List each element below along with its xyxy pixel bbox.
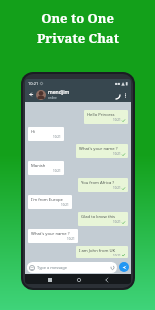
staticText: Private Chat (37, 29, 119, 47)
staticText: Manish (31, 163, 46, 169)
button[interactable]: Back (27, 90, 36, 99)
button[interactable]: Recents (45, 275, 54, 284)
button[interactable]: Hi (28, 127, 64, 141)
staticText: 10:21 (61, 203, 69, 207)
button[interactable]: I'm from Europe (28, 195, 72, 209)
button[interactable]: Call (111, 90, 121, 100)
staticText: 10:21 (113, 118, 121, 122)
staticText: 10:21 (28, 81, 39, 86)
button[interactable]: What's your name ? (28, 229, 78, 243)
staticText: 10:21 (67, 237, 75, 241)
staticText: I am John from UK (79, 248, 116, 254)
staticText: 10:21 (113, 152, 121, 156)
staticText: 10:21 (53, 169, 61, 173)
button[interactable]: What's your name ? (76, 144, 128, 158)
staticText: What's your name ? (31, 231, 70, 237)
staticText: 10:21 (113, 254, 121, 256)
staticText: online (48, 96, 57, 100)
button[interactable]: Hello Princess (84, 110, 128, 124)
other: Attach (110, 265, 115, 270)
staticText: mendjim (48, 89, 70, 96)
button[interactable]: Glad to know this (78, 212, 128, 226)
staticText: Glad to know this (81, 214, 116, 220)
staticText: What's your name ? (79, 146, 118, 152)
staticText: One to One (41, 9, 114, 27)
button[interactable]: Send (119, 262, 129, 272)
button[interactable]: More options (121, 91, 129, 99)
button[interactable]: Back (102, 275, 111, 284)
staticText: ▪▪ ▲ ▮ (115, 81, 128, 86)
button[interactable]: Manish (28, 161, 64, 175)
button[interactable]: You from Africa ? (78, 178, 128, 192)
button[interactable]: Type a message (27, 262, 117, 273)
staticText: You from Africa ? (81, 180, 115, 186)
staticText: 10:21 (53, 135, 61, 139)
staticText: 10:21 (113, 220, 121, 224)
staticText: Hello Princess (87, 112, 115, 118)
staticText: Hi (31, 129, 36, 135)
staticText: I'm from Europe (31, 197, 63, 203)
button[interactable]: Home (74, 275, 83, 284)
button[interactable]: mendjim (48, 89, 111, 100)
button[interactable]: I am John from UK (76, 246, 128, 258)
staticText: 10:21 (113, 186, 121, 190)
staticText: Type a message (37, 265, 68, 270)
